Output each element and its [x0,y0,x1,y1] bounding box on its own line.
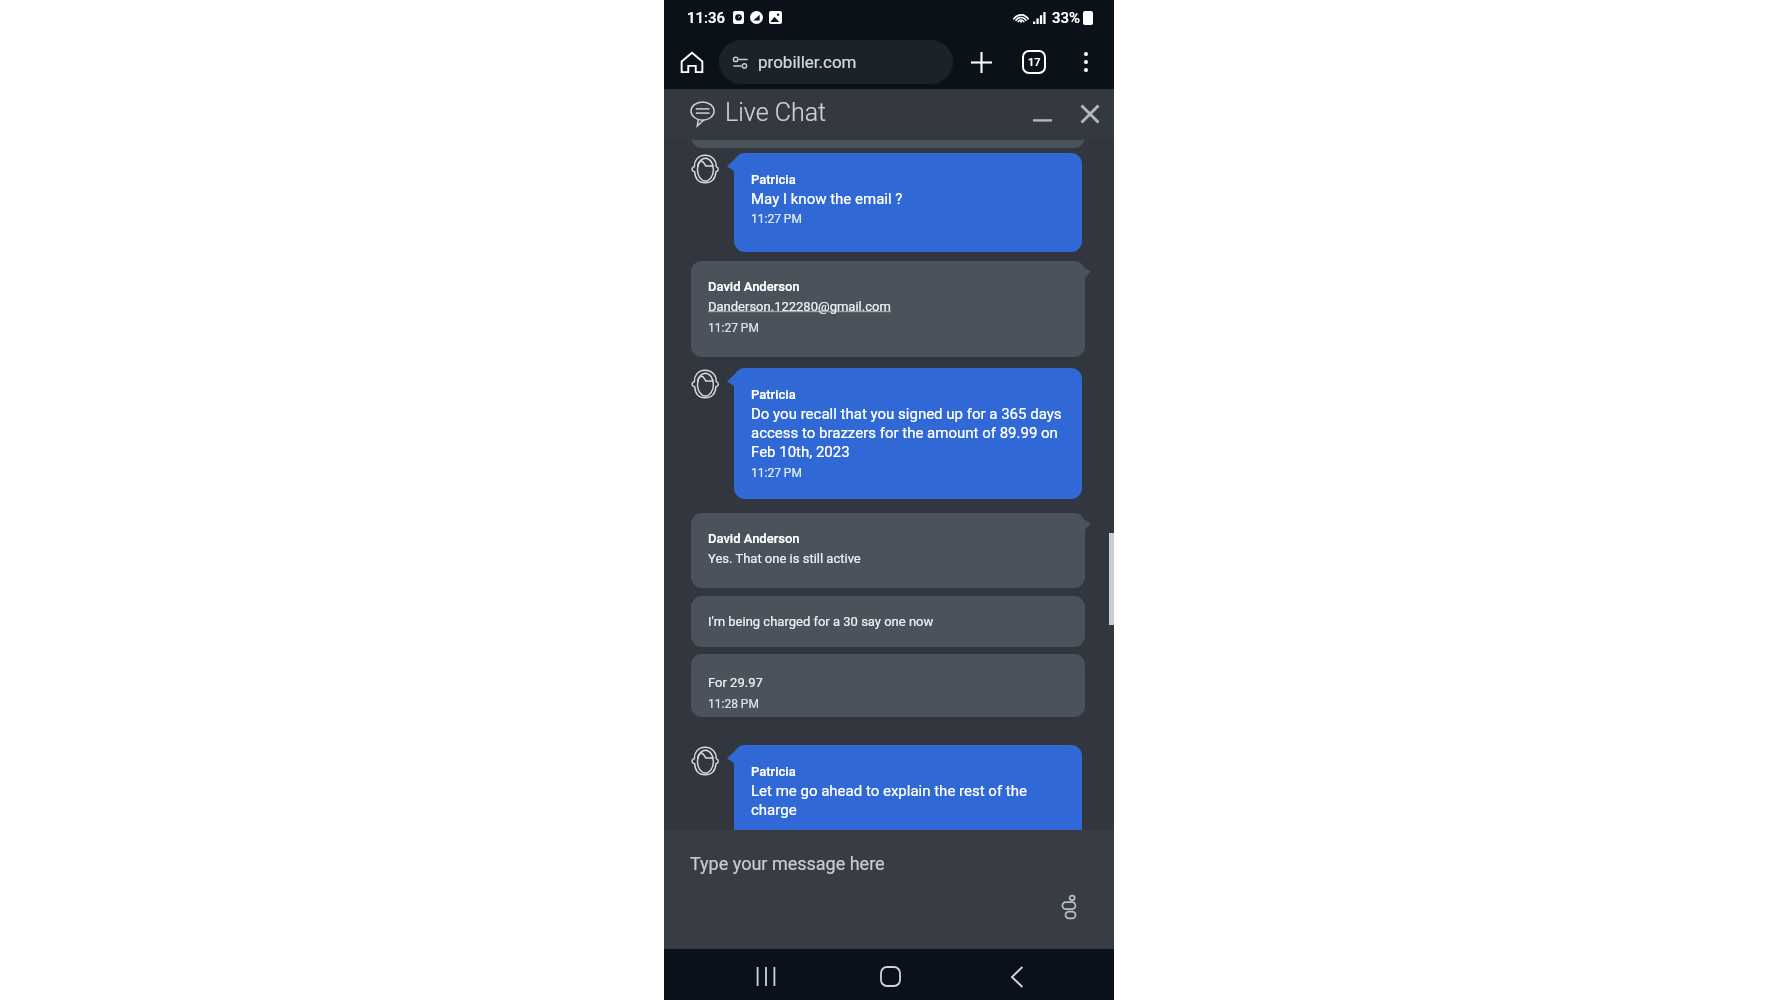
staticText: Live Chat [725,98,827,127]
button[interactable]: Attach file [1053,892,1083,922]
button[interactable]: Recent apps [738,951,794,1000]
staticText: Danderson.122280@gmail.com [708,299,891,314]
staticText: 11:27 PM [751,466,802,480]
staticText: Patricia [751,764,796,779]
staticText: Do you recall that you signed up for a 3… [751,405,1071,461]
button[interactable]: David Anderson [691,261,1085,357]
button[interactable]: Patricia [734,153,1082,252]
staticText: May I know the email ? [751,190,903,208]
button[interactable]: Live Chat [691,89,836,140]
button[interactable]: I'm being charged for a 30 say one now [691,596,1085,647]
button[interactable]: Home [675,45,709,79]
staticText: Patricia [751,387,796,402]
button[interactable]: Home [862,951,918,1000]
button[interactable]: Back [989,951,1045,1000]
button[interactable]: Minimize [1026,99,1058,131]
staticText: 11:27 PM [708,321,759,335]
button[interactable]: probiller.com [719,40,953,84]
staticText: David Anderson [708,279,800,294]
staticText: 11:27 PM [751,212,802,226]
button[interactable]: Close [1074,98,1106,130]
staticText: 11:28 PM [708,697,759,711]
staticText: 33% [1052,9,1081,27]
button[interactable]: David Anderson [691,513,1085,588]
staticText: 17 [1028,56,1041,69]
staticText: For 29.97 [708,675,763,690]
button[interactable]: For 29.97 [691,654,1085,717]
button[interactable]: Patricia [734,745,1082,830]
staticText: 11:36 [687,9,726,27]
staticText: Yes. That one is still active [708,551,861,566]
staticText: Type your message here [690,853,885,874]
staticText: I'm being charged for a 30 say one now [708,614,934,629]
button[interactable]: New tab [963,44,999,80]
staticText: David Anderson [708,531,800,546]
staticText: probiller.com [758,52,857,72]
button[interactable]: Patricia [734,368,1082,499]
staticText: Let me go ahead to explain the rest of t… [751,782,1071,819]
staticText: Patricia [751,172,796,187]
button[interactable]: More options [1074,50,1098,74]
button[interactable]: Tabs [1016,44,1052,80]
